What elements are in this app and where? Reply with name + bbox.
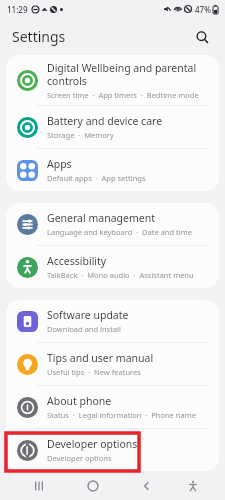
staticText: Default apps · App settings [47,173,146,183]
staticText: TalkBack · Mono audio · Assistant menu [47,270,194,280]
staticText: Useful tips · New features [47,367,141,377]
staticText: Download and install [47,324,121,334]
staticText: Settings [12,27,66,46]
button[interactable]: About phone [6,386,219,428]
button[interactable]: Software update [6,300,219,342]
button[interactable]: Search [191,26,213,48]
staticText: Status · Legal information · Phone name [47,410,196,420]
button[interactable]: Apps [6,149,219,191]
button[interactable]: Digital Wellbeing and parental controls [6,55,219,105]
button[interactable]: Back [130,471,164,500]
staticText: Accessibility [47,254,107,268]
button[interactable]: Accessibility shortcut [176,471,210,500]
staticText: Language and keyboard · Date and time [47,227,192,237]
staticText: Developer options [47,453,112,463]
button[interactable]: General management [6,203,219,245]
staticText: Software update [47,308,129,322]
staticText: Developer options [47,437,138,451]
staticText: Digital Wellbeing and parental controls [47,61,197,88]
staticText: Screen time · App timers · Bedtime mode [47,90,199,100]
button[interactable]: Recent apps [22,471,56,500]
staticText: General management [47,211,155,225]
button[interactable]: Tips and user manual [6,343,219,385]
staticText: 11:29 [7,4,28,15]
button[interactable]: Developer options [6,429,219,471]
button[interactable]: Battery and device care [6,106,219,148]
staticText: 47% [195,4,211,15]
staticText: Tips and user manual [47,351,154,365]
staticText: Storage · Memory [47,130,114,140]
staticText: About phone [47,394,112,408]
button[interactable]: Home [76,471,110,500]
button[interactable]: Accessibility [6,246,219,288]
staticText: Apps [47,157,72,171]
staticText: Battery and device care [47,114,163,128]
